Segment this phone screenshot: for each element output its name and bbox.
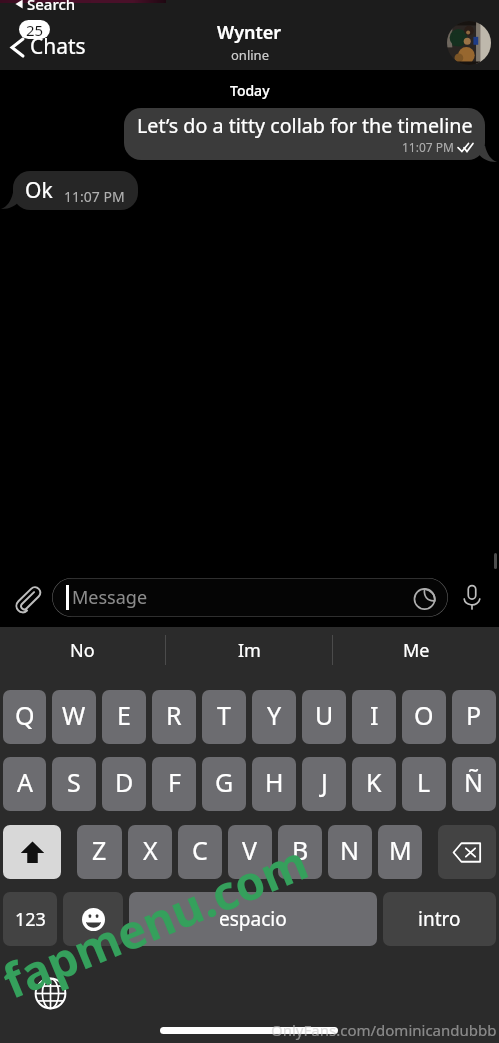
staticText: C <box>192 833 208 867</box>
staticText: Q <box>15 698 35 732</box>
button[interactable]: 123 <box>3 892 57 946</box>
staticText: L <box>417 765 431 799</box>
staticText: Z <box>92 833 107 867</box>
staticText: T <box>217 698 231 732</box>
button[interactable]: T <box>202 690 246 744</box>
staticText: R <box>166 698 182 732</box>
button[interactable]: M <box>378 825 422 879</box>
staticText: 11:07 PM <box>64 187 125 206</box>
button[interactable]: Emoji keyboard <box>63 892 123 946</box>
button[interactable]: Ñ <box>452 757 496 811</box>
staticText: M <box>389 833 412 867</box>
button[interactable]: intro <box>383 892 496 946</box>
staticText: fapmenu.com <box>0 829 317 1012</box>
button[interactable]: 25 <box>19 20 50 39</box>
button[interactable]: E <box>102 690 146 744</box>
button[interactable]: V <box>228 825 272 879</box>
staticText: Today <box>230 81 270 100</box>
staticText: Y <box>267 698 282 732</box>
staticText: Ñ <box>464 765 484 799</box>
staticText: Wynter <box>217 20 282 45</box>
staticText: I <box>370 698 379 732</box>
button[interactable]: W <box>52 690 96 744</box>
button[interactable]: Im <box>166 627 332 673</box>
staticText: K <box>366 765 382 799</box>
button[interactable]: K <box>352 757 396 811</box>
button[interactable]: Change keyboard language <box>34 977 66 1009</box>
button[interactable]: Message <box>52 578 448 617</box>
button[interactable]: X <box>128 825 172 879</box>
staticText: Message <box>72 585 148 610</box>
button[interactable]: R <box>152 690 196 744</box>
staticText: F <box>168 765 181 799</box>
staticText: No <box>70 638 95 663</box>
staticText: Search <box>27 0 76 10</box>
button[interactable]: S <box>52 757 96 811</box>
button[interactable]: H <box>252 757 296 811</box>
staticText: P <box>466 698 482 732</box>
staticText: H <box>265 765 284 799</box>
button[interactable]: No <box>0 627 165 673</box>
button[interactable]: Shift <box>3 825 61 879</box>
button[interactable]: F <box>152 757 196 811</box>
staticText: Let’s do a titty collab for the timeline <box>137 112 473 139</box>
button[interactable]: Backspace <box>438 825 496 879</box>
button[interactable]: D <box>102 757 146 811</box>
button[interactable]: U <box>302 690 346 744</box>
staticText: W <box>62 698 86 732</box>
button[interactable]: J <box>302 757 346 811</box>
button[interactable]: Ok <box>13 171 138 210</box>
button[interactable]: Let’s do a titty collab for the timeline <box>124 108 485 160</box>
staticText: 25 <box>26 20 44 39</box>
staticText: J <box>321 765 328 799</box>
staticText: espacio <box>219 906 287 932</box>
button[interactable]: N <box>328 825 372 879</box>
button[interactable]: espacio <box>129 892 377 946</box>
button[interactable]: Z <box>77 825 122 879</box>
button[interactable]: Attach file <box>10 581 42 613</box>
staticText: E <box>117 698 131 732</box>
staticText: 123 <box>15 907 46 932</box>
staticText: G <box>215 765 234 799</box>
button[interactable]: G <box>202 757 246 811</box>
staticText: OnlyFans.com/dominicandubbb <box>271 1020 497 1040</box>
staticText: N <box>340 833 360 867</box>
button[interactable]: Me <box>333 627 499 673</box>
staticText: D <box>115 765 134 799</box>
button[interactable]: Chats <box>0 16 86 70</box>
button[interactable]: Y <box>252 690 296 744</box>
staticText: Im <box>238 638 261 663</box>
button[interactable]: P <box>452 690 496 744</box>
staticText: online <box>231 46 269 64</box>
staticText: A <box>17 765 33 799</box>
button[interactable]: Q <box>3 690 46 744</box>
staticText: 11:07 PM <box>402 139 454 155</box>
button[interactable]: C <box>178 825 222 879</box>
button[interactable]: B <box>278 825 322 879</box>
staticText: Ok <box>25 176 53 205</box>
staticText: B <box>292 833 309 867</box>
staticText: X <box>143 833 158 867</box>
button[interactable]: Profile photo <box>447 21 491 65</box>
button[interactable]: Record voice message <box>456 581 488 613</box>
staticText: S <box>67 765 81 799</box>
button[interactable]: O <box>402 690 446 744</box>
button[interactable]: I <box>352 690 396 744</box>
button[interactable]: Stickers <box>412 585 438 611</box>
staticText: O <box>414 698 434 732</box>
button[interactable]: A <box>3 757 46 811</box>
staticText: V <box>242 833 258 867</box>
staticText: Me <box>403 638 430 663</box>
button[interactable]: L <box>402 757 446 811</box>
staticText: Chats <box>30 32 86 61</box>
staticText: intro <box>418 906 461 932</box>
staticText: U <box>315 698 334 732</box>
